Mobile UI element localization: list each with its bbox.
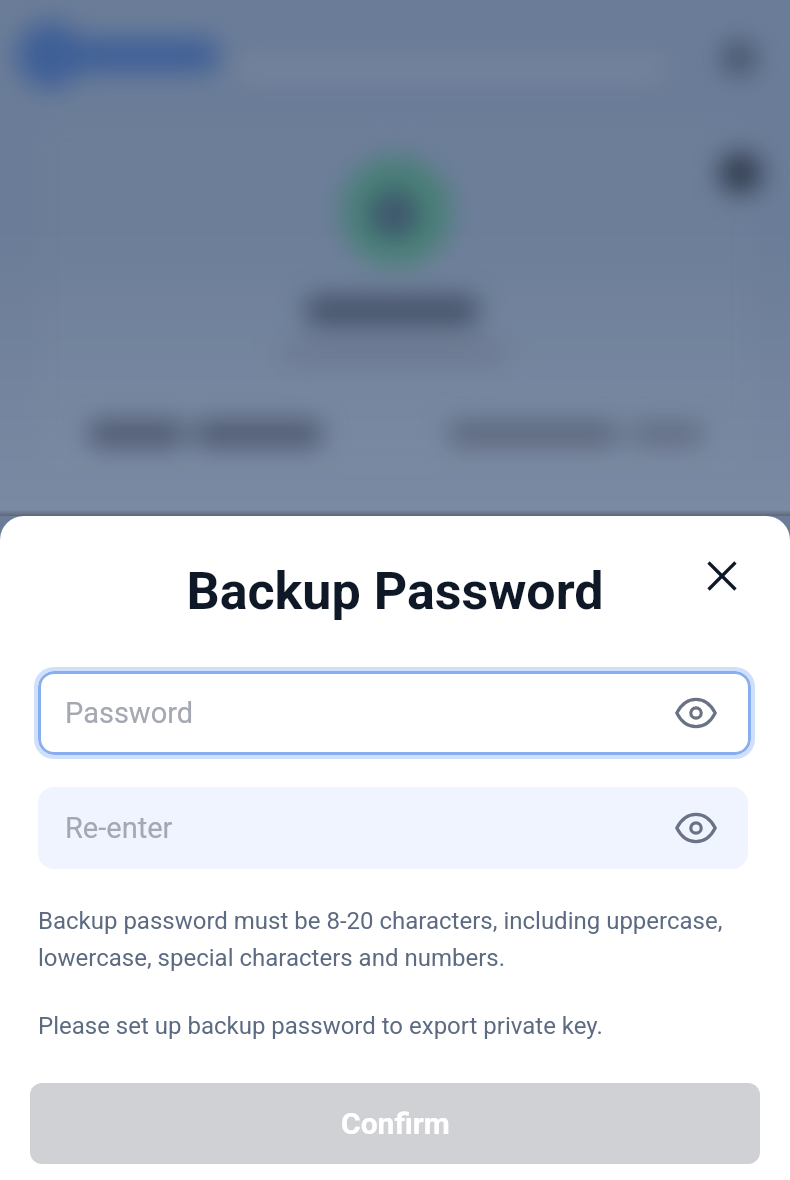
staticText: Password bbox=[65, 696, 194, 730]
staticText: Please set up backup password to export … bbox=[38, 1012, 603, 1040]
button[interactable]: Re-enter bbox=[38, 787, 748, 869]
button[interactable]: Password bbox=[38, 671, 751, 755]
staticText: Confirm bbox=[341, 1106, 450, 1141]
button[interactable]: Close bbox=[690, 544, 754, 608]
staticText: Re-enter bbox=[65, 811, 173, 845]
button[interactable]: Show re-entered password bbox=[663, 795, 729, 861]
staticText: Backup Password bbox=[0, 561, 790, 622]
button[interactable]: Confirm bbox=[30, 1083, 760, 1164]
staticText: Backup password must be 8-20 characters,… bbox=[38, 907, 733, 983]
button[interactable]: Show password bbox=[663, 680, 729, 746]
